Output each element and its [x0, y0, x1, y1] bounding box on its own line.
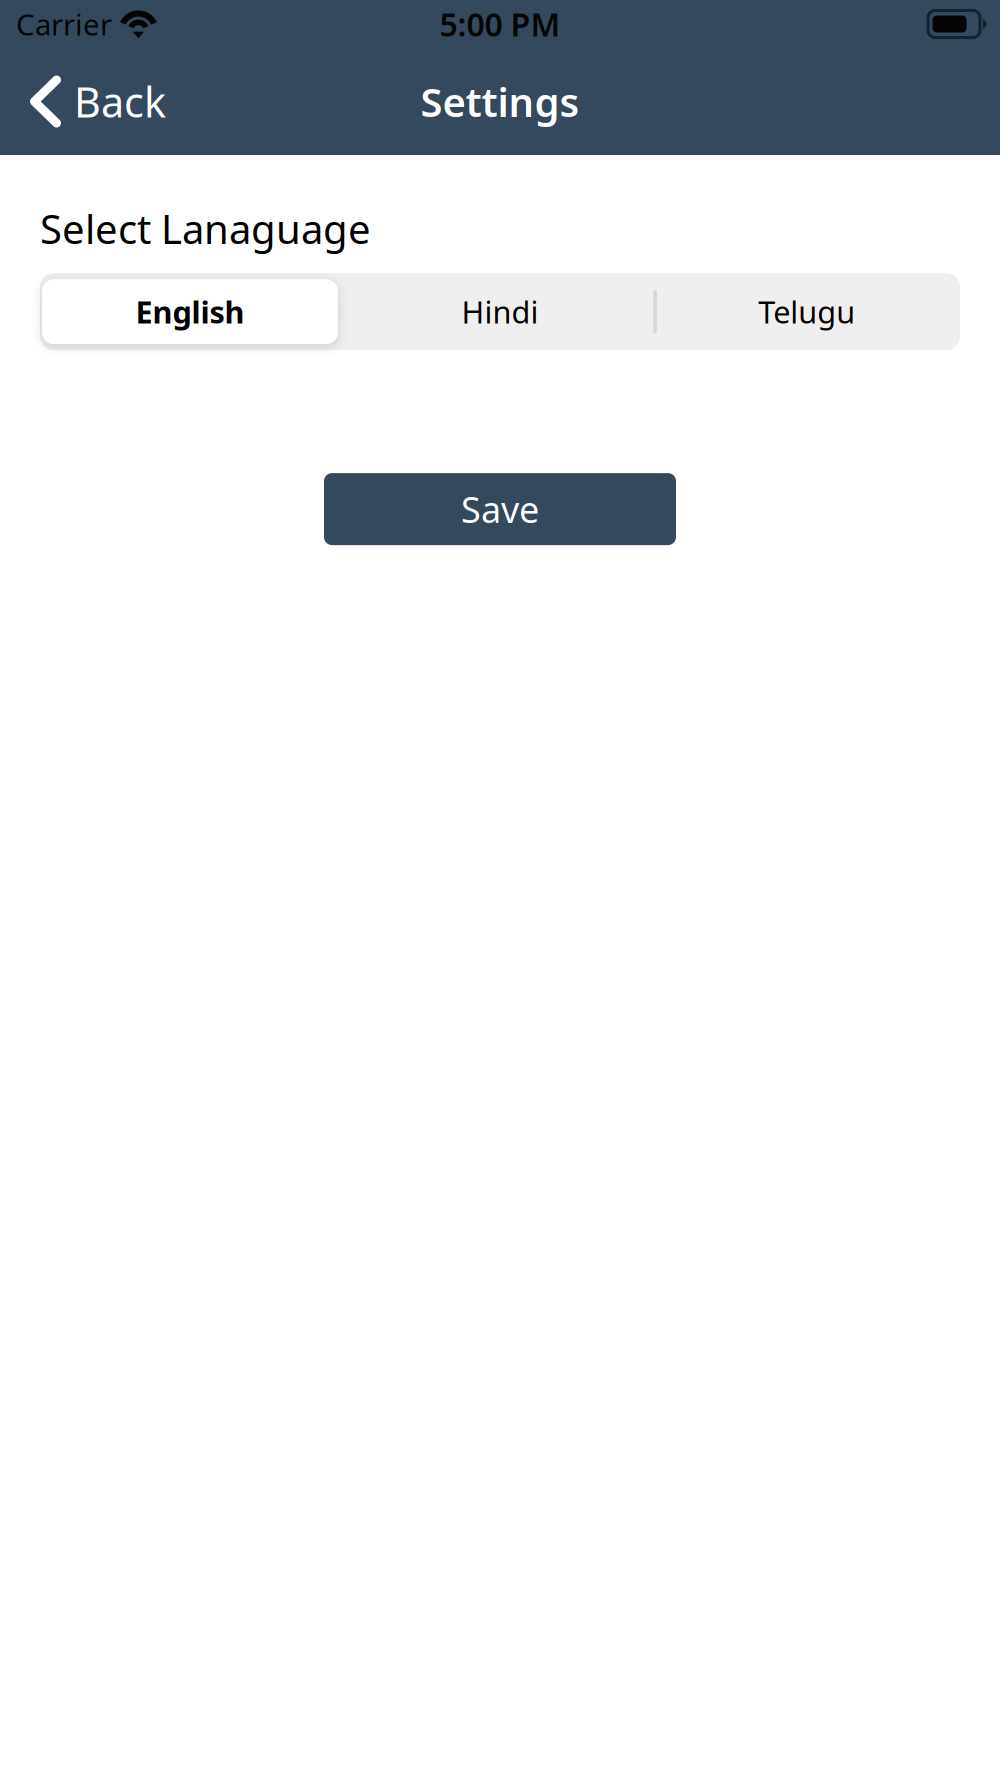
staticText: English: [135, 291, 244, 332]
staticText: Select Lanaguage: [40, 202, 371, 255]
staticText: 5:00 PM: [439, 3, 560, 45]
button[interactable]: Telugu: [653, 273, 960, 350]
staticText: Settings: [420, 75, 579, 128]
staticText: Carrier: [16, 4, 112, 43]
button[interactable]: Back: [0, 54, 186, 149]
staticText: Save: [461, 485, 539, 533]
button[interactable]: Hindi: [347, 273, 653, 350]
button[interactable]: English: [40, 273, 347, 350]
staticText: Hindi: [461, 291, 538, 332]
staticText: Telugu: [758, 291, 855, 332]
staticText: Back: [74, 74, 166, 129]
button[interactable]: Save: [324, 473, 676, 545]
